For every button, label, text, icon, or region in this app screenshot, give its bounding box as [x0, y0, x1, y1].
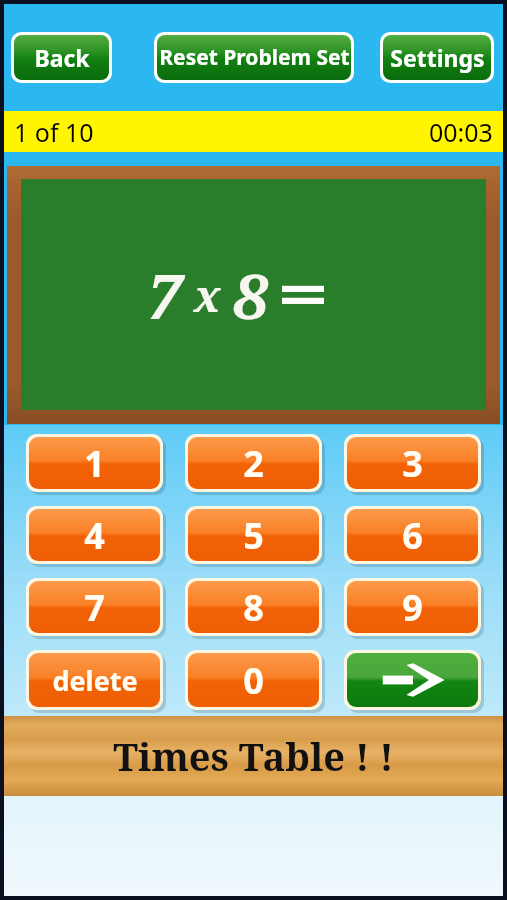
staticText: 5: [243, 511, 264, 560]
staticText: Back: [34, 42, 90, 73]
staticText: 4: [84, 511, 105, 560]
staticText: 7: [84, 583, 105, 632]
staticText: 8: [243, 583, 264, 632]
staticText: 00:03: [429, 115, 493, 149]
button[interactable]: 6: [347, 509, 478, 561]
staticText: 6: [402, 511, 423, 560]
button[interactable]: Next problem: [347, 653, 478, 707]
staticText: 8: [233, 253, 268, 337]
button[interactable]: Settings: [383, 35, 491, 80]
staticText: 0: [243, 656, 264, 705]
staticText: 1: [84, 439, 105, 488]
button[interactable]: 7: [29, 581, 160, 633]
button[interactable]: delete: [29, 653, 160, 707]
button[interactable]: 3: [347, 437, 478, 489]
staticText: Times Table ! !: [113, 730, 394, 782]
button[interactable]: Back: [14, 35, 109, 80]
staticText: Reset Problem Set: [159, 43, 350, 72]
button[interactable]: 9: [347, 581, 478, 633]
button[interactable]: 8: [188, 581, 319, 633]
staticText: 2: [243, 439, 264, 488]
staticText: 7: [147, 253, 182, 337]
button[interactable]: 1: [29, 437, 160, 489]
staticText: delete: [52, 662, 138, 699]
staticText: 3: [402, 439, 423, 488]
staticText: Settings: [390, 42, 485, 73]
staticText: 1 of 10: [14, 115, 94, 149]
button[interactable]: 5: [188, 509, 319, 561]
button[interactable]: Reset Problem Set: [157, 35, 351, 80]
button[interactable]: 4: [29, 509, 160, 561]
staticText: 9: [402, 583, 423, 632]
staticText: x: [194, 265, 221, 325]
button[interactable]: 2: [188, 437, 319, 489]
button[interactable]: 0: [188, 653, 319, 707]
